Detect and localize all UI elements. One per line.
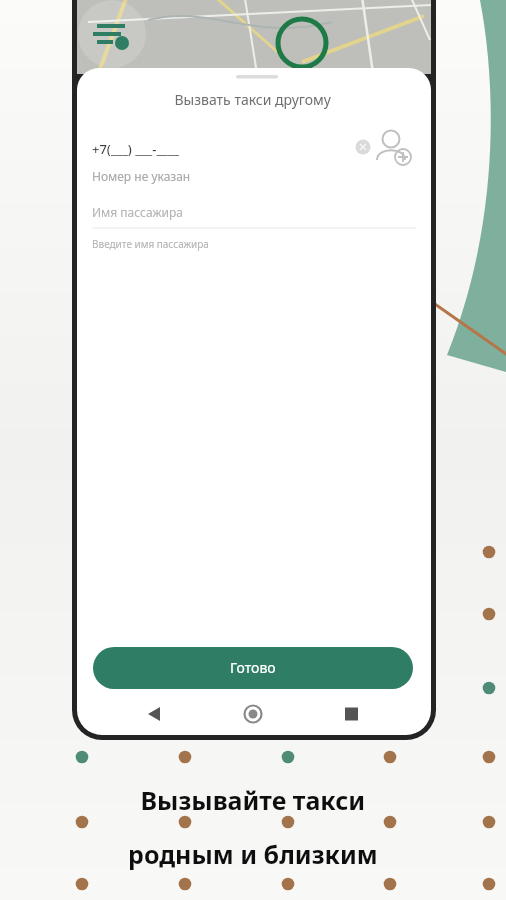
button[interactable]: Главный экран: [234, 698, 272, 730]
button[interactable]: Последние приложения: [332, 698, 370, 730]
button[interactable]: Готово: [93, 647, 413, 689]
button[interactable]: Выбрать из контактов: [374, 128, 414, 166]
button[interactable]: Очистить номер: [352, 136, 374, 158]
button[interactable]: Назад: [140, 698, 178, 730]
button[interactable]: Номер телефона: [92, 128, 342, 160]
button[interactable]: Имя пассажира: [92, 192, 416, 228]
